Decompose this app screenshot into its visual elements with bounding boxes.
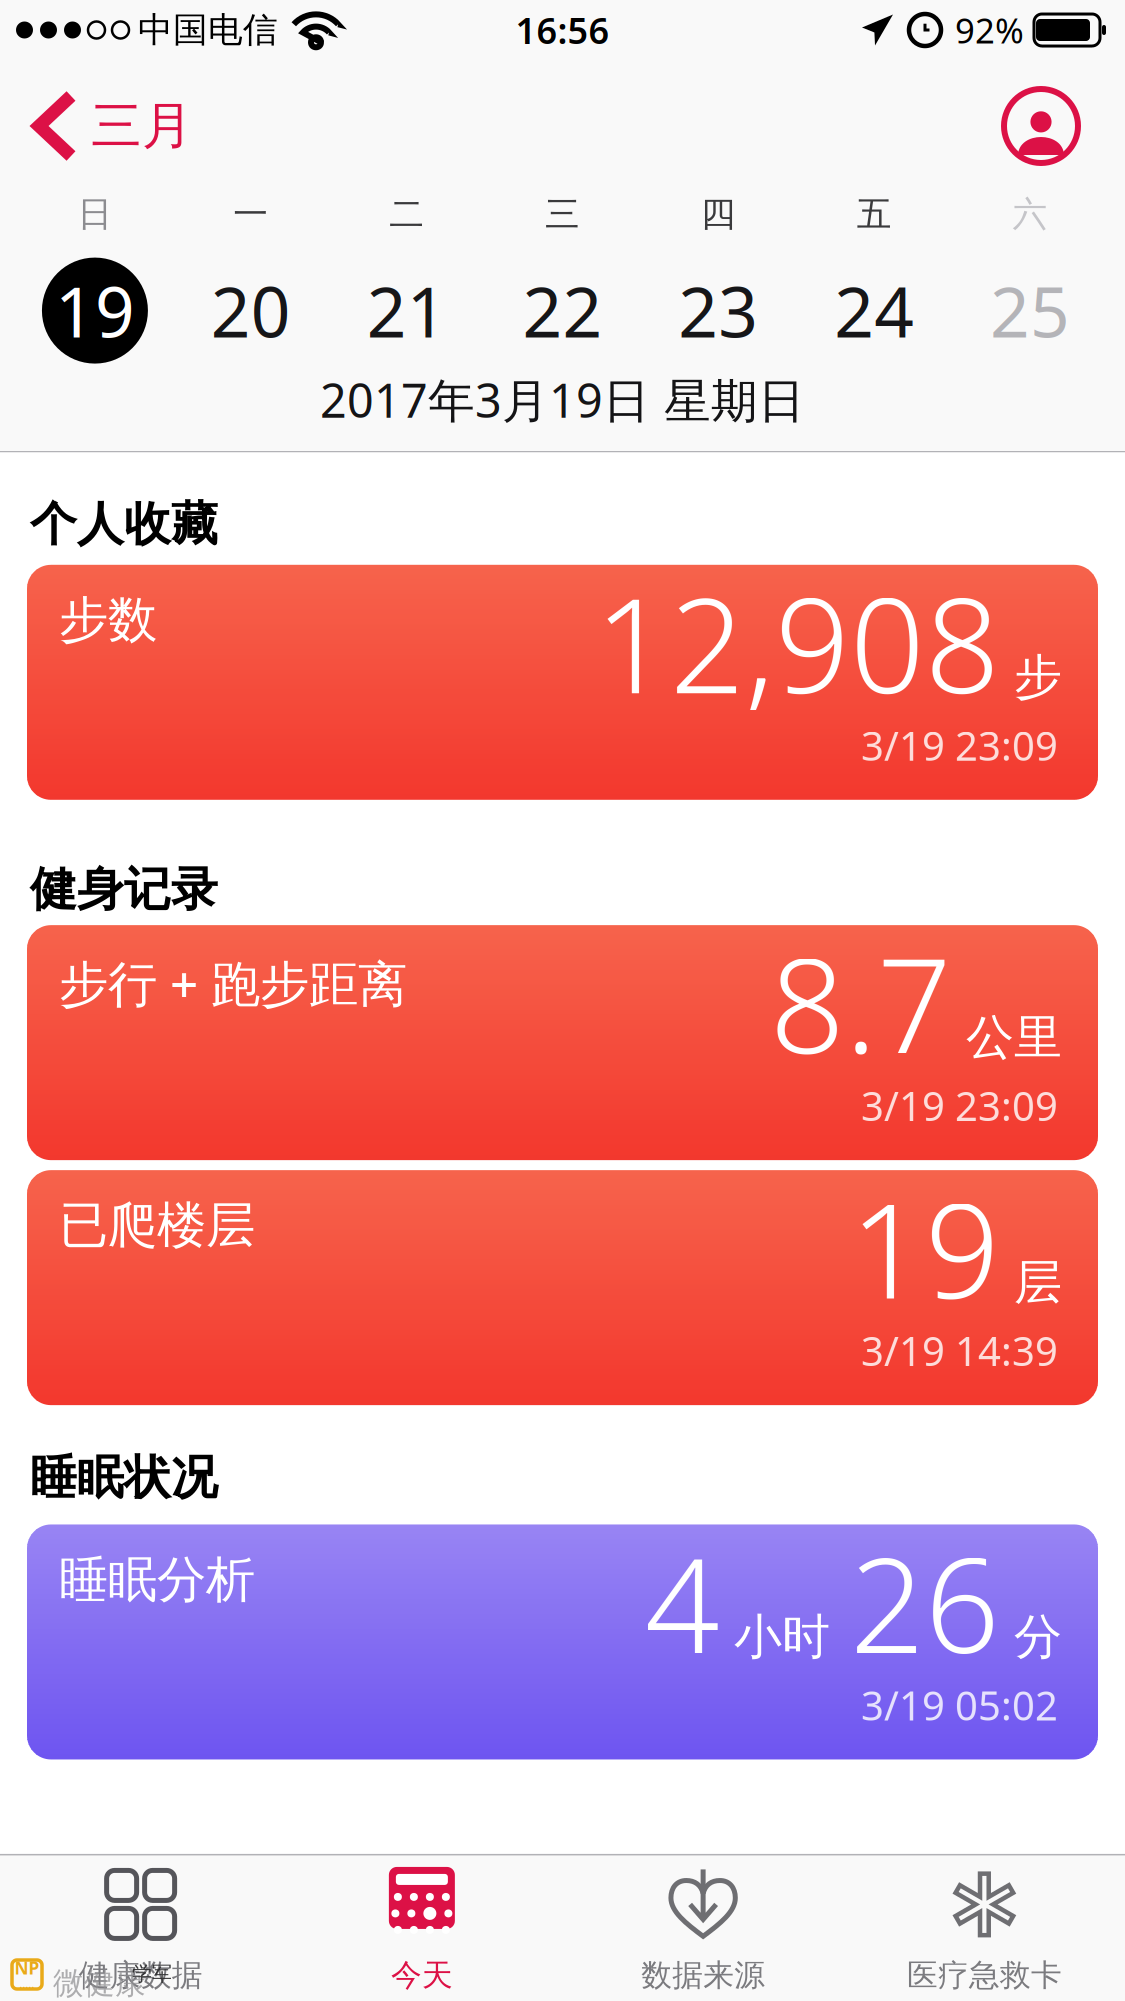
button[interactable]: 医疗急救卡 bbox=[844, 1867, 1125, 1994]
staticText: 2017年3月19日 星期日 bbox=[320, 369, 805, 431]
button[interactable]: 19 bbox=[17, 258, 173, 364]
staticText: 个人收藏 bbox=[30, 495, 218, 553]
staticText: 六 bbox=[1013, 193, 1048, 236]
staticText: 19 bbox=[55, 264, 135, 357]
staticText: 三 bbox=[545, 193, 580, 236]
staticText: 分 bbox=[1014, 1607, 1062, 1666]
button[interactable]: 24 bbox=[796, 258, 952, 364]
staticText: 步行 + 跑步距离 bbox=[59, 950, 407, 1016]
button[interactable]: 三月 bbox=[0, 95, 193, 157]
button[interactable] bbox=[1003, 88, 1079, 164]
staticText: 小时 bbox=[734, 1607, 830, 1666]
staticText: 16:56 bbox=[515, 6, 609, 54]
staticText: 医疗急救卡 bbox=[907, 1956, 1062, 1994]
staticText: 19 bbox=[850, 1161, 1000, 1335]
staticText: 92% bbox=[955, 7, 1024, 53]
staticText: 日 bbox=[77, 193, 112, 236]
staticText: 8.7 bbox=[770, 916, 952, 1090]
staticText: 步数 bbox=[59, 590, 157, 650]
staticText: 健康数据 bbox=[79, 1956, 203, 1994]
staticText: 中国电信 bbox=[138, 9, 278, 51]
staticText: 20 bbox=[211, 264, 291, 357]
button[interactable]: 步数 bbox=[27, 565, 1098, 800]
button[interactable]: 21 bbox=[329, 258, 485, 364]
staticText: NP bbox=[14, 1956, 39, 1979]
staticText: 12,908 bbox=[595, 556, 1000, 729]
staticText: 睡眠分析 bbox=[59, 1549, 255, 1610]
button[interactable]: 健康数据 bbox=[0, 1867, 281, 1994]
staticText: 3/19 14:39 bbox=[861, 1324, 1058, 1377]
staticText: 微健康 bbox=[53, 1964, 146, 2001]
staticText: 四 bbox=[701, 193, 736, 236]
button[interactable]: 25 bbox=[952, 258, 1108, 364]
button[interactable]: 23 bbox=[640, 258, 796, 364]
button[interactable]: 22 bbox=[485, 258, 640, 364]
button[interactable]: 睡眠分析 bbox=[27, 1524, 1098, 1759]
staticText: 一 bbox=[233, 193, 268, 236]
staticText: 步 bbox=[1014, 648, 1062, 707]
staticText: 3/19 05:02 bbox=[861, 1678, 1058, 1731]
staticText: 数据来源 bbox=[641, 1956, 765, 1994]
staticText: 今天 bbox=[391, 1956, 453, 1994]
staticText: 五 bbox=[857, 193, 892, 236]
button[interactable]: 今天 bbox=[281, 1867, 562, 1994]
staticText: 23 bbox=[678, 264, 758, 357]
staticText: 学军 bbox=[132, 1961, 172, 1986]
staticText: 睡眠状况 bbox=[30, 1449, 218, 1506]
staticText: 二 bbox=[389, 193, 424, 236]
staticText: 层 bbox=[1014, 1253, 1062, 1312]
staticText: 22 bbox=[522, 264, 602, 357]
staticText: 3/19 23:09 bbox=[861, 1079, 1058, 1132]
staticText: 25 bbox=[990, 264, 1070, 357]
staticText: 26 bbox=[850, 1515, 1000, 1689]
staticText: 4 bbox=[645, 1515, 720, 1689]
staticText: 健身记录 bbox=[30, 861, 218, 918]
staticText: 已爬楼层 bbox=[59, 1195, 255, 1256]
button[interactable]: 数据来源 bbox=[562, 1867, 844, 1994]
button[interactable]: 步行 + 跑步距离 bbox=[27, 925, 1098, 1160]
staticText: 三月 bbox=[91, 95, 193, 157]
button[interactable]: 已爬楼层 bbox=[27, 1170, 1098, 1405]
staticText: 3/19 23:09 bbox=[861, 719, 1058, 772]
staticText: ····· bbox=[19, 1980, 34, 1993]
staticText: 公里 bbox=[966, 1008, 1062, 1067]
staticText: 24 bbox=[834, 264, 914, 357]
button[interactable]: 20 bbox=[173, 258, 329, 364]
staticText: 21 bbox=[367, 264, 447, 357]
